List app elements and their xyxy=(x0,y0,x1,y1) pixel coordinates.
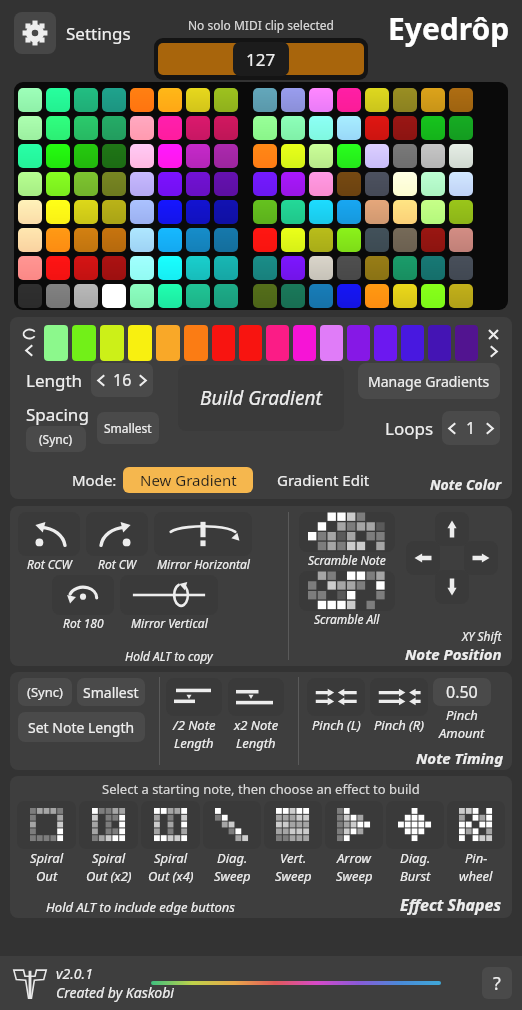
button[interactable] xyxy=(74,284,98,308)
button[interactable] xyxy=(186,284,210,308)
button[interactable] xyxy=(393,172,417,196)
button[interactable] xyxy=(184,325,208,361)
button[interactable] xyxy=(365,284,389,308)
button[interactable]: Build Gradient xyxy=(178,365,344,431)
button[interactable]: Smallest xyxy=(77,678,145,706)
button[interactable] xyxy=(74,172,98,196)
button[interactable]: Settings xyxy=(14,12,56,54)
button[interactable] xyxy=(309,256,333,280)
button[interactable] xyxy=(18,172,42,196)
button[interactable] xyxy=(214,256,238,280)
button[interactable]: Vert. Sweep xyxy=(264,801,322,849)
button[interactable] xyxy=(449,172,473,196)
button[interactable] xyxy=(281,256,305,280)
button[interactable] xyxy=(421,256,445,280)
button[interactable]: Pin- wheel xyxy=(447,801,505,849)
button[interactable] xyxy=(102,200,126,224)
button[interactable] xyxy=(46,228,70,252)
button[interactable] xyxy=(18,256,42,280)
button[interactable]: Spiral Out (x2) xyxy=(79,801,138,849)
button[interactable] xyxy=(74,144,98,168)
button[interactable] xyxy=(421,284,445,308)
button[interactable]: Rotate counter-clockwise xyxy=(18,512,80,556)
button[interactable] xyxy=(365,116,389,140)
button[interactable]: Manage Gradients xyxy=(358,363,500,399)
button[interactable] xyxy=(18,228,42,252)
button[interactable] xyxy=(253,256,277,280)
button[interactable] xyxy=(102,256,126,280)
button[interactable] xyxy=(253,284,277,308)
button[interactable] xyxy=(365,256,389,280)
button[interactable] xyxy=(130,88,154,112)
button[interactable] xyxy=(266,325,289,361)
button[interactable] xyxy=(100,325,124,361)
button[interactable]: (Sync) xyxy=(18,678,72,706)
button[interactable] xyxy=(374,325,397,361)
button[interactable] xyxy=(130,172,154,196)
button[interactable]: Pinch right xyxy=(370,678,428,716)
button[interactable] xyxy=(309,172,333,196)
button[interactable]: Gradient Edit xyxy=(277,470,370,490)
button[interactable]: Help xyxy=(482,967,512,999)
button[interactable]: 0.50 xyxy=(433,678,491,706)
button[interactable]: Mirror vertical xyxy=(120,575,218,615)
button[interactable]: Next gradient xyxy=(480,323,506,363)
button[interactable]: Shift up xyxy=(435,512,469,546)
button[interactable] xyxy=(214,88,238,112)
button[interactable] xyxy=(130,228,154,252)
button[interactable] xyxy=(158,88,182,112)
button[interactable] xyxy=(186,200,210,224)
button[interactable] xyxy=(421,144,445,168)
button[interactable] xyxy=(347,325,370,361)
button[interactable] xyxy=(393,284,417,308)
button[interactable] xyxy=(128,325,152,361)
button[interactable] xyxy=(186,256,210,280)
button[interactable] xyxy=(393,116,417,140)
button[interactable]: Diag. Sweep xyxy=(203,801,261,849)
button[interactable] xyxy=(253,88,277,112)
button[interactable] xyxy=(449,88,473,112)
button[interactable] xyxy=(158,144,182,168)
button[interactable]: Rotate 180 xyxy=(52,575,114,615)
button[interactable] xyxy=(421,172,445,196)
button[interactable] xyxy=(281,116,305,140)
button[interactable] xyxy=(365,144,389,168)
button[interactable] xyxy=(158,256,182,280)
button[interactable]: Diag. Burst xyxy=(386,801,444,849)
button[interactable] xyxy=(281,88,305,112)
button[interactable] xyxy=(337,200,361,224)
button[interactable] xyxy=(46,200,70,224)
button[interactable] xyxy=(214,200,238,224)
button[interactable] xyxy=(130,116,154,140)
button[interactable] xyxy=(102,116,126,140)
button[interactable] xyxy=(281,144,305,168)
button[interactable] xyxy=(281,284,305,308)
button[interactable] xyxy=(18,88,42,112)
button[interactable]: Shift left xyxy=(406,541,440,575)
button[interactable] xyxy=(455,325,478,361)
button[interactable]: Shift down xyxy=(435,570,469,604)
button[interactable] xyxy=(18,200,42,224)
button[interactable] xyxy=(320,325,343,361)
button[interactable] xyxy=(393,200,417,224)
button[interactable] xyxy=(449,144,473,168)
button[interactable] xyxy=(46,172,70,196)
button[interactable] xyxy=(44,325,68,361)
button[interactable] xyxy=(337,228,361,252)
button[interactable] xyxy=(158,284,182,308)
button[interactable]: Double note length xyxy=(228,678,284,716)
button[interactable] xyxy=(309,88,333,112)
button[interactable] xyxy=(186,88,210,112)
button[interactable] xyxy=(428,325,451,361)
button[interactable] xyxy=(74,228,98,252)
button[interactable]: Spiral Out xyxy=(17,801,76,849)
button[interactable] xyxy=(421,228,445,252)
button[interactable]: (Sync) xyxy=(26,426,86,452)
button[interactable] xyxy=(449,284,473,308)
button[interactable] xyxy=(72,325,96,361)
button[interactable] xyxy=(214,172,238,196)
button[interactable] xyxy=(74,200,98,224)
button[interactable]: New Gradient xyxy=(123,467,253,493)
button[interactable] xyxy=(337,256,361,280)
button[interactable] xyxy=(130,144,154,168)
